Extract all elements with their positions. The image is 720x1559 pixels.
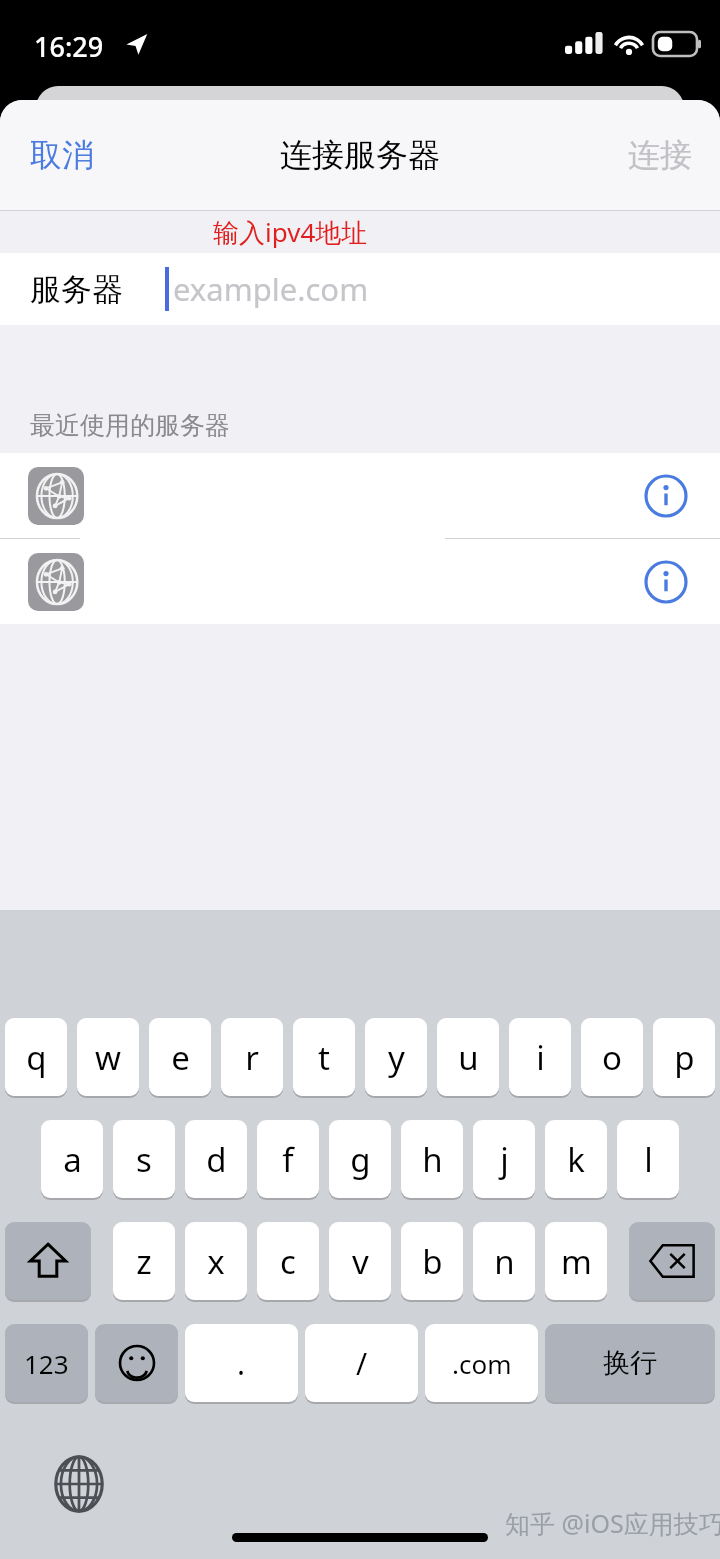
button[interactable]: t [293, 1018, 355, 1096]
button[interactable]: d [185, 1120, 247, 1198]
staticText: s [136, 1137, 152, 1182]
button[interactable]: x [185, 1222, 247, 1300]
staticText: 连接 [628, 135, 692, 175]
button[interactable]: 连接 [608, 121, 720, 189]
button[interactable]: Numbers [5, 1324, 88, 1402]
button[interactable]: z [113, 1222, 175, 1300]
button[interactable]: Backspace [629, 1222, 715, 1300]
button[interactable]: v [329, 1222, 391, 1300]
staticText: 最近使用的服务器 [30, 410, 230, 441]
button[interactable]: g [329, 1120, 391, 1198]
button[interactable]: Emoji [95, 1324, 178, 1402]
button[interactable]: n [473, 1222, 535, 1300]
staticText: e [171, 1035, 190, 1080]
button[interactable]: Shift [5, 1222, 91, 1300]
staticText: n [494, 1239, 515, 1284]
button[interactable]: m [545, 1222, 607, 1300]
button[interactable]: More info [644, 474, 688, 518]
staticText: / [356, 1343, 368, 1384]
staticText: j [500, 1137, 509, 1182]
button[interactable]: k [545, 1120, 607, 1198]
button[interactable]: y [365, 1018, 427, 1096]
staticText: q [26, 1035, 47, 1080]
staticText: f [282, 1137, 294, 1182]
button[interactable]: p [653, 1018, 715, 1096]
button[interactable]: i [509, 1018, 571, 1096]
button[interactable]: Slash [305, 1324, 418, 1402]
staticText: .com [452, 1346, 512, 1381]
staticText: h [422, 1137, 443, 1182]
button[interactable]: Return [545, 1324, 715, 1402]
button[interactable]: f [257, 1120, 319, 1198]
staticText: i [536, 1035, 545, 1080]
button[interactable]: Switch keyboard [50, 1455, 108, 1513]
staticText: 输入ipv4地址 [213, 214, 368, 250]
button[interactable]: c [257, 1222, 319, 1300]
staticText: 123 [24, 1346, 69, 1381]
staticText: 服务器 [30, 270, 123, 309]
staticText: y [388, 1035, 405, 1080]
staticText: c [280, 1239, 296, 1284]
button[interactable]: s [113, 1120, 175, 1198]
staticText: example.com [173, 268, 369, 310]
button[interactable]: u [437, 1018, 499, 1096]
staticText: k [567, 1137, 585, 1182]
staticText: t [318, 1035, 330, 1080]
button[interactable]: l [617, 1120, 679, 1198]
button[interactable]: q [5, 1018, 67, 1096]
staticText: p [674, 1035, 695, 1080]
staticText: 取消 [30, 135, 94, 175]
button[interactable]: 服务器 [0, 253, 720, 325]
button[interactable]: h [401, 1120, 463, 1198]
button[interactable]: r [221, 1018, 283, 1096]
staticText: w [95, 1035, 121, 1080]
button[interactable]: a [41, 1120, 103, 1198]
button[interactable]: dot com [425, 1324, 538, 1402]
button[interactable]: More info [644, 560, 688, 604]
button[interactable]: More info [0, 453, 720, 538]
staticText: b [422, 1239, 443, 1284]
staticText: 16:29 [34, 28, 104, 65]
button[interactable]: 取消 [0, 121, 114, 189]
button[interactable]: j [473, 1120, 535, 1198]
staticText: g [350, 1137, 371, 1182]
staticText: v [352, 1239, 369, 1284]
staticText: a [63, 1137, 82, 1182]
staticText: l [644, 1137, 653, 1182]
staticText: u [458, 1035, 479, 1080]
staticText: d [206, 1137, 227, 1182]
staticText: 知乎 @iOS应用技巧 [505, 1506, 720, 1540]
staticText: . [237, 1343, 246, 1384]
staticText: z [136, 1239, 152, 1284]
button[interactable]: More info [0, 539, 720, 624]
staticText: r [245, 1035, 259, 1080]
staticText: m [561, 1239, 592, 1284]
staticText: 连接服务器 [280, 135, 440, 175]
button[interactable]: e [149, 1018, 211, 1096]
staticText: o [602, 1035, 622, 1080]
button[interactable]: w [77, 1018, 139, 1096]
button[interactable]: o [581, 1018, 643, 1096]
button[interactable]: b [401, 1222, 463, 1300]
staticText: 换行 [603, 1346, 657, 1380]
staticText: x [207, 1239, 225, 1284]
button[interactable]: Period [185, 1324, 298, 1402]
